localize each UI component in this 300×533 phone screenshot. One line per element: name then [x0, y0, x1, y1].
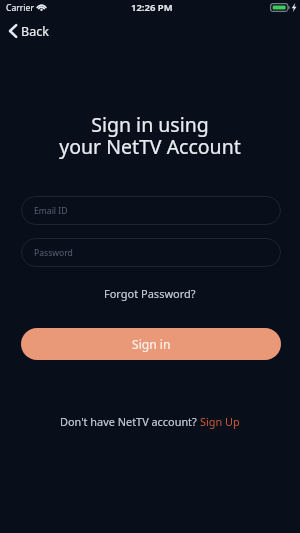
- button[interactable]: Password: [21, 238, 281, 267]
- button[interactable]: Back: [8, 23, 49, 39]
- staticText: Carrier: [6, 2, 34, 14]
- button[interactable]: Sign Up: [200, 414, 240, 429]
- staticText: Email ID: [34, 205, 68, 217]
- staticText: your NetTV Account: [0, 133, 300, 160]
- staticText: Password: [34, 247, 73, 259]
- staticText: Sign in using: [0, 111, 300, 138]
- button[interactable]: Email ID: [21, 196, 281, 225]
- staticText: Back: [21, 23, 49, 39]
- staticText: Don't have NetTV account?: [60, 414, 200, 429]
- button[interactable]: Forgot Password?: [98, 283, 202, 304]
- staticText: 12:26 PM: [131, 1, 173, 14]
- button[interactable]: Sign in: [21, 328, 281, 360]
- staticText: Sign in: [132, 336, 171, 352]
